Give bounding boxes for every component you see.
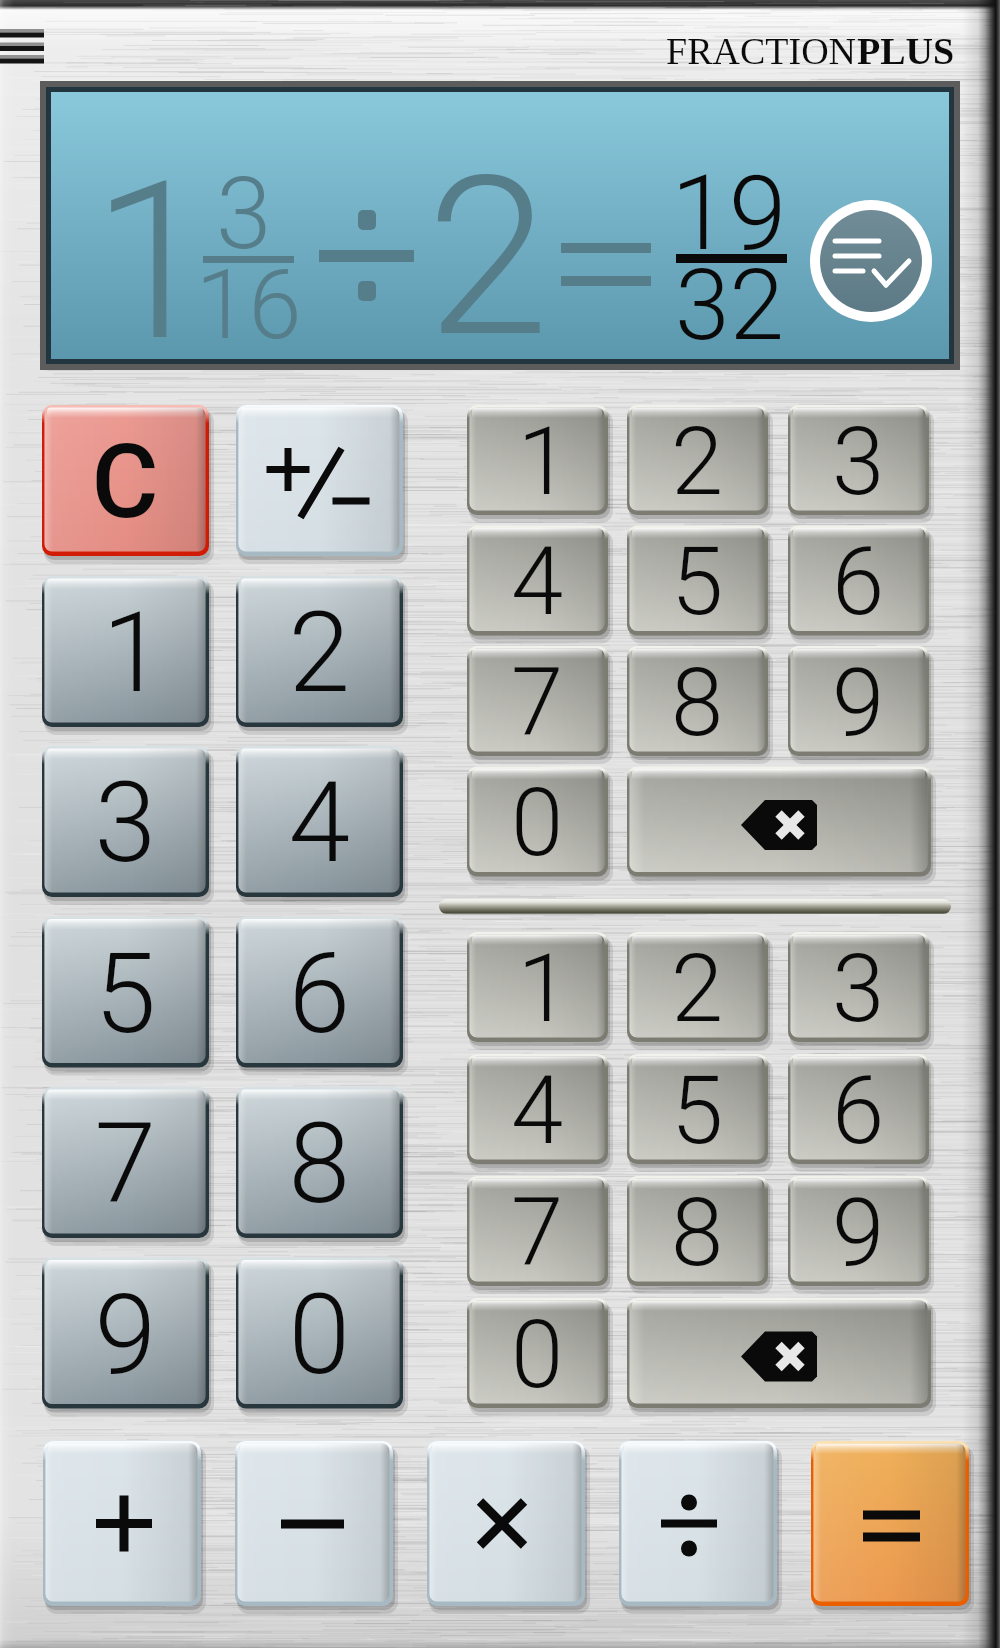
button[interactable]: 4 xyxy=(467,526,608,636)
button[interactable]: History xyxy=(810,200,932,322)
button[interactable]: 4 xyxy=(236,746,403,897)
button[interactable]: 5 xyxy=(627,526,768,636)
button[interactable]: Menu xyxy=(0,12,62,74)
button[interactable]: Backspace xyxy=(627,1298,931,1408)
button[interactable]: 8 xyxy=(627,1176,768,1286)
button[interactable]: 7 xyxy=(42,1087,209,1238)
button[interactable]: 1 xyxy=(467,932,608,1042)
button[interactable]: 5 xyxy=(627,1054,768,1164)
button[interactable]: 9 xyxy=(42,1258,209,1409)
button[interactable]: 1 xyxy=(467,405,608,515)
button[interactable]: 2 xyxy=(627,405,768,515)
button[interactable]: Equals xyxy=(811,1441,969,1606)
button[interactable]: 9 xyxy=(788,1176,929,1286)
button[interactable]: Fraction Plus xyxy=(660,20,960,70)
button[interactable]: 7 xyxy=(467,646,608,756)
button[interactable]: 2 xyxy=(236,576,403,727)
button[interactable]: 8 xyxy=(627,646,768,756)
button[interactable]: 9 xyxy=(788,646,929,756)
button[interactable]: Plus xyxy=(43,1441,201,1606)
button[interactable]: 0 xyxy=(467,1298,608,1408)
button[interactable]: 0 xyxy=(467,767,608,877)
button[interactable]: 6 xyxy=(788,1054,929,1164)
button[interactable]: 4 xyxy=(467,1054,608,1164)
button[interactable]: Divide xyxy=(619,1441,777,1606)
button[interactable]: 3 xyxy=(42,746,209,897)
button[interactable]: Clear xyxy=(42,405,209,556)
button[interactable]: 6 xyxy=(788,526,929,636)
button[interactable]: 6 xyxy=(236,917,403,1068)
button[interactable]: 3 xyxy=(788,932,929,1042)
button[interactable]: 8 xyxy=(236,1087,403,1238)
button[interactable]: 5 xyxy=(42,917,209,1068)
button[interactable]: 7 xyxy=(467,1176,608,1286)
button[interactable]: 0 xyxy=(236,1258,403,1409)
button[interactable]: 2 xyxy=(627,932,768,1042)
button[interactable]: 1 xyxy=(42,576,209,727)
button[interactable]: Minus xyxy=(235,1441,393,1606)
button[interactable]: Backspace xyxy=(627,767,931,877)
button[interactable]: 3 xyxy=(788,405,929,515)
button[interactable]: Plus minus xyxy=(236,405,403,556)
button[interactable]: Multiply xyxy=(427,1441,585,1606)
